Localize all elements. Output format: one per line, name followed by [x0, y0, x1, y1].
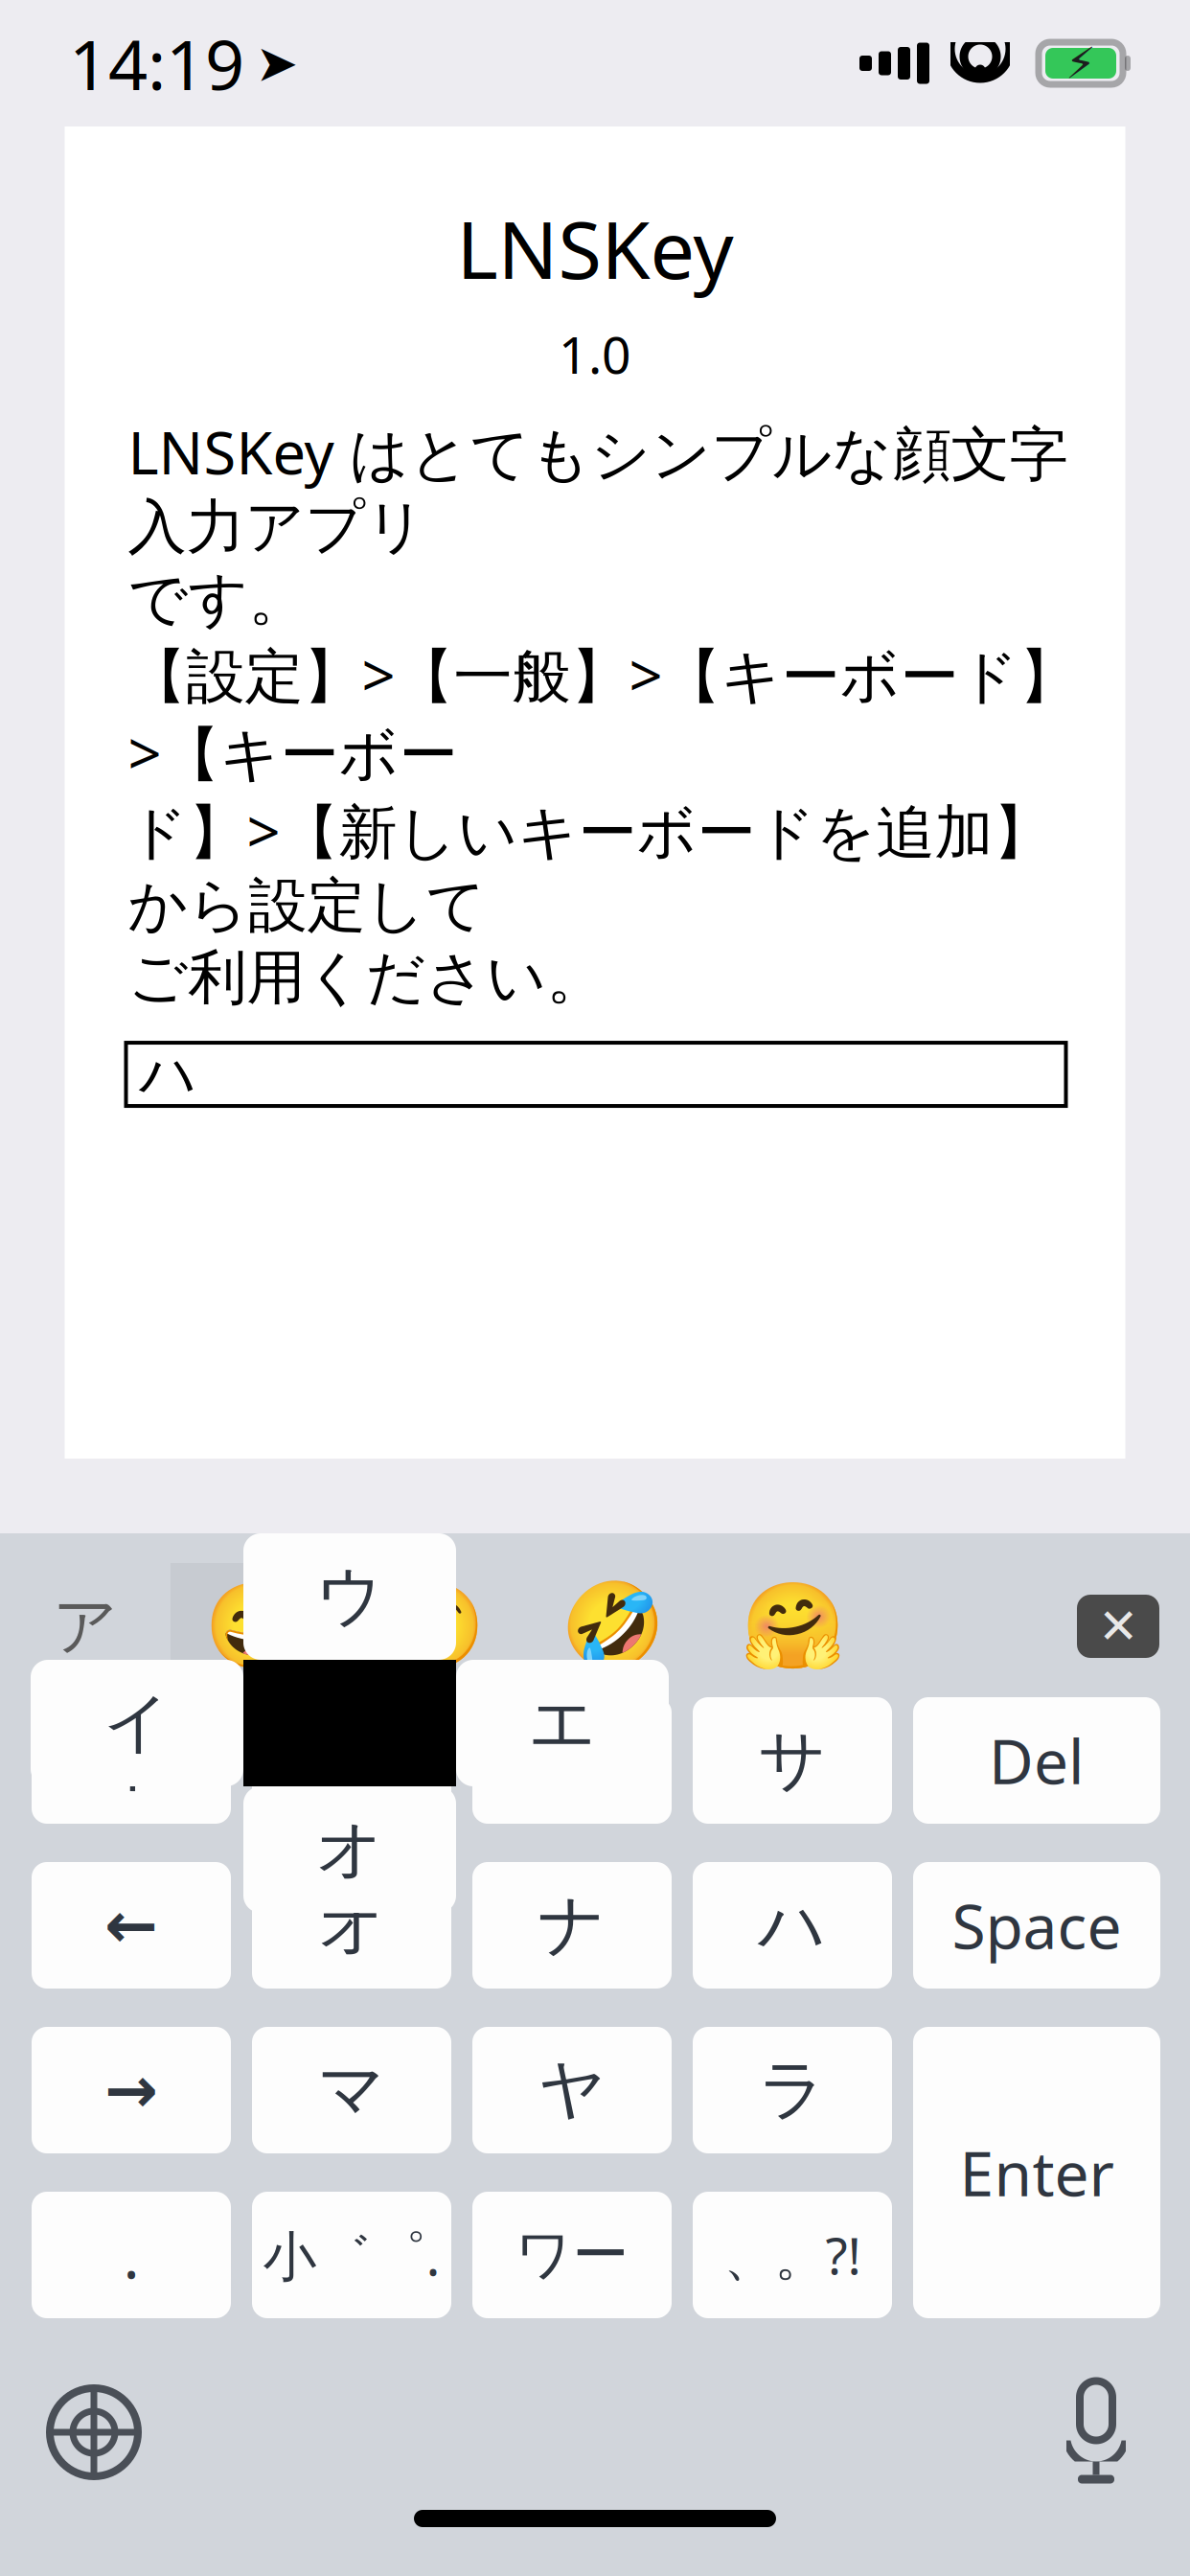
button[interactable]: ←	[32, 1862, 231, 1989]
staticText: ワー	[515, 2220, 629, 2290]
button[interactable]: 🤣	[523, 1563, 703, 1690]
button[interactable]: ア	[252, 1697, 451, 1824]
button[interactable]: 、。?!	[693, 2192, 892, 2318]
staticText: 【設定】>【一般】>【キーボード】>【キーボー	[128, 635, 1077, 791]
button[interactable]: Dictation	[1019, 2370, 1173, 2495]
button[interactable]: Enter	[913, 2027, 1160, 2318]
staticText: エ	[528, 1682, 596, 1764]
staticText: ア	[53, 1587, 118, 1666]
button[interactable]: 小゛゜.	[252, 2192, 451, 2318]
button[interactable]: ア	[0, 1563, 171, 1690]
staticText: LNSKey	[457, 195, 733, 301]
staticText: 小゛゜.	[263, 2219, 440, 2291]
button[interactable]: ワー	[472, 2192, 672, 2318]
staticText: エ	[538, 1720, 606, 1801]
staticText: ➤	[255, 34, 298, 92]
button[interactable]: Next keyboard	[17, 2370, 171, 2495]
button[interactable]: 😄	[171, 1563, 343, 1690]
staticText: 😢	[380, 1578, 486, 1674]
staticText: ←	[104, 1889, 158, 1962]
button[interactable]: サ	[693, 1697, 892, 1824]
button[interactable]: エ	[456, 1660, 669, 1786]
staticText: ご利用ください。	[128, 942, 605, 1014]
staticText: LNSKey はとてもシンプルな顔文字入力アプリ	[128, 413, 1068, 563]
button[interactable]: エ	[472, 1697, 672, 1824]
button[interactable]: オ	[243, 1786, 456, 1913]
staticText: ヤ	[538, 2049, 606, 2131]
staticText: ア	[318, 1720, 386, 1801]
staticText: ウ	[316, 1556, 384, 1637]
button[interactable]: Delete	[1046, 1563, 1190, 1690]
button[interactable]: .	[32, 2192, 231, 2318]
staticText: ⚡︎	[1065, 39, 1096, 88]
staticText: ド】>【新しいキーボードを追加】から設定して	[128, 791, 1052, 942]
staticText: Enter	[960, 2132, 1114, 2213]
staticText: ナ	[538, 1884, 606, 1966]
button[interactable]: マ	[252, 2027, 451, 2153]
staticText: Space	[952, 1885, 1121, 1966]
staticText: オ	[318, 1884, 386, 1966]
button[interactable]: オ	[252, 1862, 451, 1989]
staticText: です。	[128, 563, 307, 635]
button[interactable]: イ	[31, 1660, 243, 1786]
staticText: 1.0	[559, 320, 631, 388]
staticText: イ	[103, 1682, 171, 1764]
button[interactable]: 😢	[343, 1563, 523, 1690]
button[interactable]: 🤗	[703, 1563, 883, 1690]
staticText: 😄	[204, 1578, 309, 1674]
button[interactable]: ラ	[693, 2027, 892, 2153]
staticText: イ	[97, 1720, 165, 1801]
button[interactable]: イ	[32, 1697, 231, 1824]
staticText: ハ	[139, 1040, 197, 1109]
button[interactable]: Del	[913, 1697, 1160, 1824]
staticText: サ	[758, 1720, 826, 1801]
staticText: .	[123, 2214, 139, 2296]
staticText: Del	[989, 1720, 1085, 1801]
staticText: オ	[316, 1809, 384, 1890]
staticText: 🤣	[561, 1578, 666, 1674]
staticText: 14:19	[69, 17, 244, 109]
button[interactable]: ア	[243, 1660, 456, 1786]
button[interactable]: ナ	[472, 1862, 672, 1989]
button[interactable]: ウ	[243, 1533, 456, 1660]
button[interactable]: ハ	[126, 1043, 1066, 1106]
staticText: →	[104, 2054, 158, 2126]
staticText: 🤗	[741, 1578, 846, 1674]
button[interactable]: Space	[913, 1862, 1160, 1989]
staticText: ラ	[758, 2049, 826, 2131]
staticText: ✕	[1098, 1599, 1138, 1654]
staticText: 、。?!	[724, 2221, 861, 2289]
button[interactable]: ハ	[693, 1862, 892, 1989]
button[interactable]: →	[32, 2027, 231, 2153]
staticText: ハ	[758, 1884, 826, 1966]
button[interactable]: ヤ	[472, 2027, 672, 2153]
staticText: マ	[318, 2049, 386, 2131]
